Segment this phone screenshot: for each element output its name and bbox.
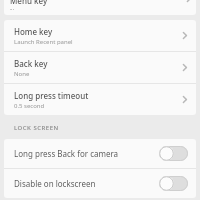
staticText: Launch Recent panel <box>14 38 73 46</box>
staticText: Long press Back for camera <box>14 148 155 159</box>
button[interactable]: Disable on lockscreen <box>4 169 196 198</box>
button[interactable]: Back key <box>4 52 196 83</box>
staticText: LOCK SCREEN <box>14 124 59 132</box>
other: Home key <box>180 30 189 41</box>
other: Long press Back for camera <box>159 146 188 161</box>
staticText: 0.5 second <box>14 102 45 110</box>
button[interactable]: Home key <box>4 20 196 51</box>
staticText: Home key <box>14 26 53 37</box>
other: Menu key <box>184 0 193 4</box>
staticText: Disable on lockscreen <box>14 178 155 189</box>
staticText: Long press timeout <box>14 90 89 101</box>
button[interactable]: Long press Back for camera <box>4 139 196 168</box>
other: Disable on lockscreen <box>159 176 188 191</box>
staticText: Menu key <box>10 0 48 6</box>
other: Back key <box>180 62 189 73</box>
button[interactable]: Long press timeout <box>4 84 196 115</box>
staticText: Back key <box>14 58 48 69</box>
other: Long press timeout <box>180 94 189 105</box>
staticText: None <box>10 7 26 10</box>
button[interactable]: Menu key <box>4 0 196 15</box>
staticText: None <box>14 70 30 78</box>
